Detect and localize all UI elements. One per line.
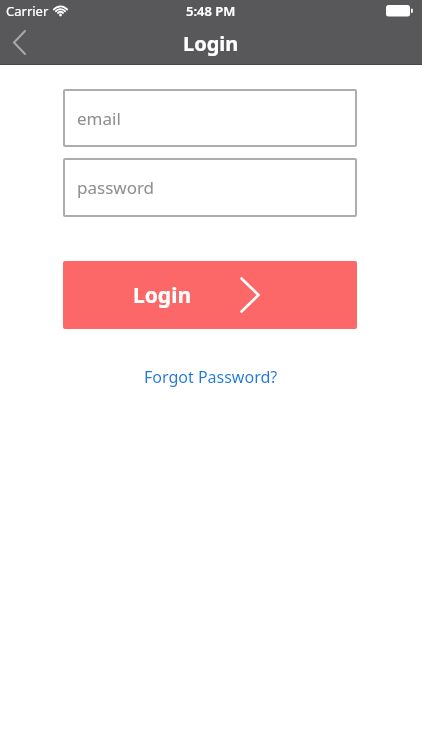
staticText: Carrier — [6, 2, 49, 20]
button[interactable]: email — [63, 89, 357, 147]
button[interactable]: Forgot Password? — [144, 366, 278, 388]
staticText: password — [77, 176, 155, 199]
staticText: 5:48 PM — [186, 2, 236, 20]
button[interactable] — [0, 22, 44, 64]
staticText: email — [77, 107, 121, 130]
button[interactable]: Login — [63, 261, 357, 329]
button[interactable]: password — [63, 158, 357, 217]
staticText: Login — [133, 281, 192, 310]
staticText: Login — [183, 30, 239, 57]
